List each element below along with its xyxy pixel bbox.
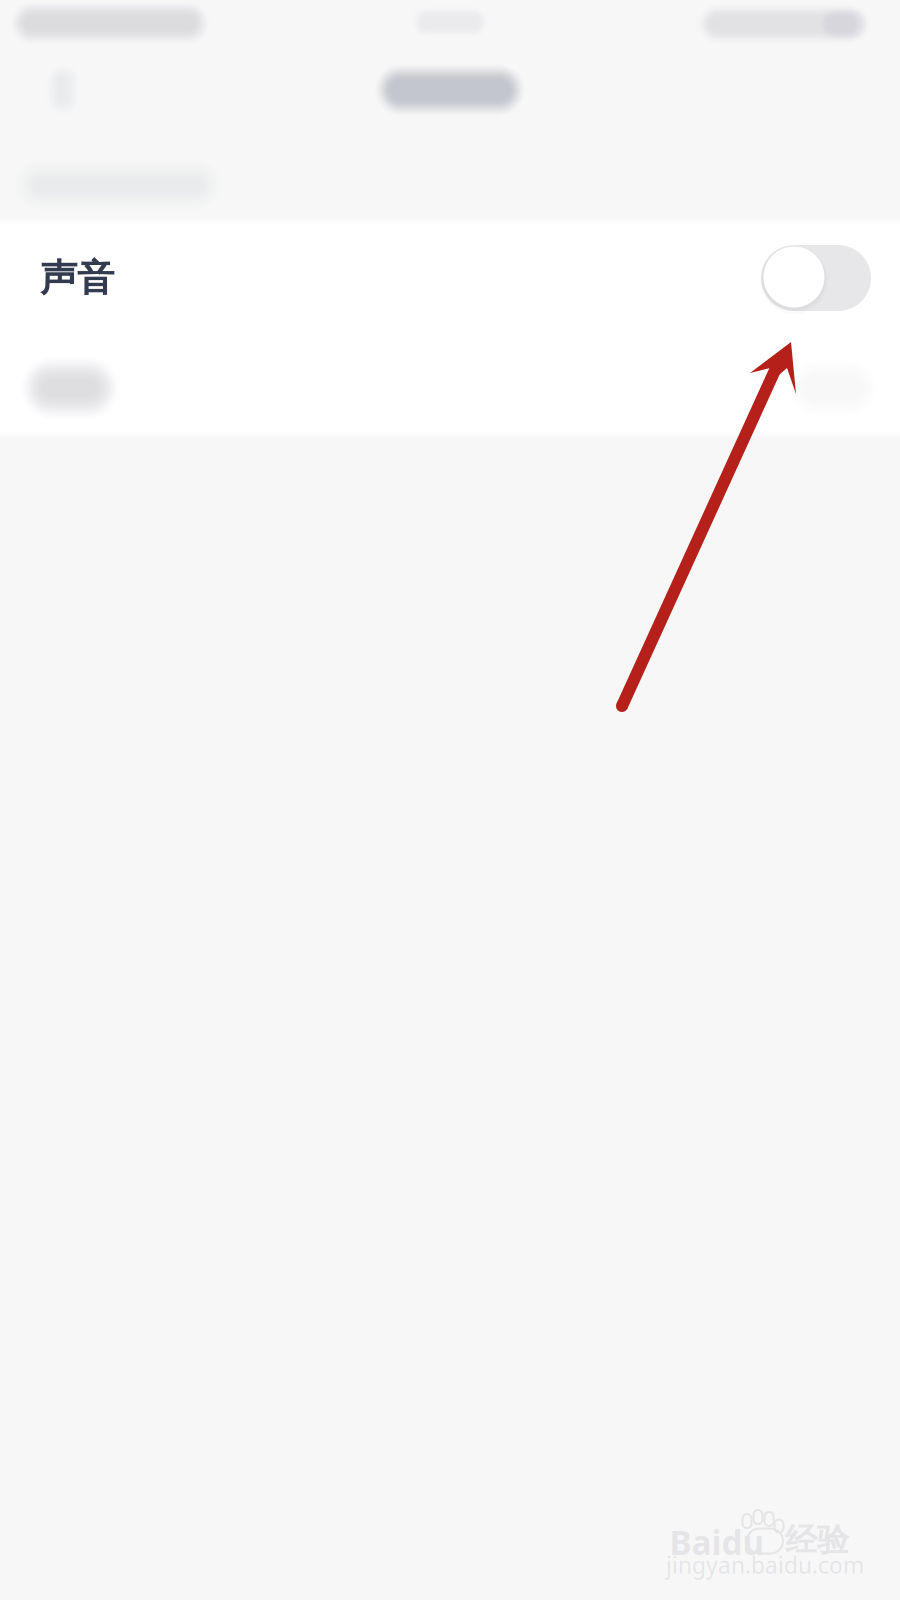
staticText: Baidu	[669, 1520, 764, 1564]
button[interactable]: 声音	[0, 223, 900, 333]
staticText: 经验	[785, 1520, 849, 1560]
staticText: 声音	[40, 255, 114, 301]
button[interactable]: Back	[19, 51, 107, 129]
button[interactable]: Settings row	[0, 340, 900, 436]
staticText: jingyan.baidu.com	[666, 1550, 864, 1580]
